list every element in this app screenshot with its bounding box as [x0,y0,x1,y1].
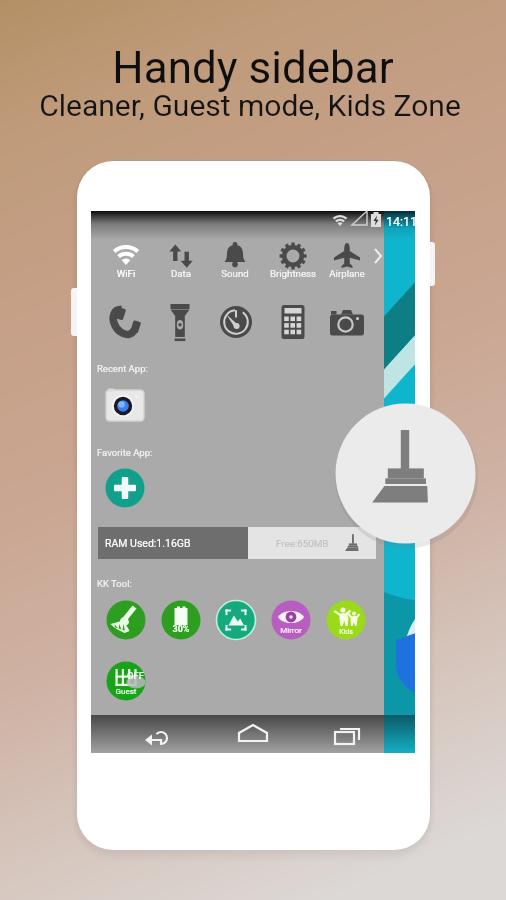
staticText: KK Tool: [97,578,132,589]
staticText: Sound [195,268,275,279]
staticText: Kids [306,628,386,636]
staticText: Mirror [251,626,331,635]
button[interactable]: Phone [100,300,148,344]
staticText: 30% [141,624,221,635]
button[interactable]: Calculator [269,300,317,344]
button[interactable]: Add favorite app [105,468,145,508]
staticText: 14:11 [386,214,418,229]
button[interactable]: Battery [161,600,201,640]
button[interactable]: Screenshot [216,600,256,640]
button[interactable]: Data [155,238,207,282]
button[interactable]: Mirror [271,600,311,640]
staticText: OFF [127,670,145,681]
button[interactable]: Clean RAM [98,527,376,559]
button[interactable]: Timer [212,300,260,344]
button[interactable]: Camera [323,300,371,344]
staticText: Airplane [307,268,387,279]
staticText: Brightness [253,268,333,279]
button[interactable]: Home [225,715,281,753]
staticText: Data [141,268,221,279]
button[interactable]: Back [130,715,186,753]
staticText: Free:650MB [276,538,329,549]
button[interactable]: Brightness [267,238,319,282]
button[interactable]: Clean [336,404,476,544]
staticText: Recent App: [97,363,148,374]
staticText: WiFi [86,268,166,279]
staticText: RAM Used:1.16GB [105,537,191,549]
staticText: Favorite App: [97,447,153,458]
staticText: Handy sidebar [0,42,506,94]
button[interactable]: Airplane [321,238,373,282]
button[interactable]: Cleaner [106,600,146,640]
button[interactable]: WiFi [100,238,152,282]
button[interactable]: Recents [320,715,376,753]
staticText: Cleaner, Guest mode, Kids Zone [0,88,503,123]
staticText: Guest [86,687,166,696]
button[interactable]: Sound [209,238,261,282]
button[interactable]: Flashlight [156,300,204,344]
button[interactable]: Guest mode [106,660,146,700]
button[interactable]: Camera app [106,390,144,421]
button[interactable]: Kids Zone [326,600,366,640]
